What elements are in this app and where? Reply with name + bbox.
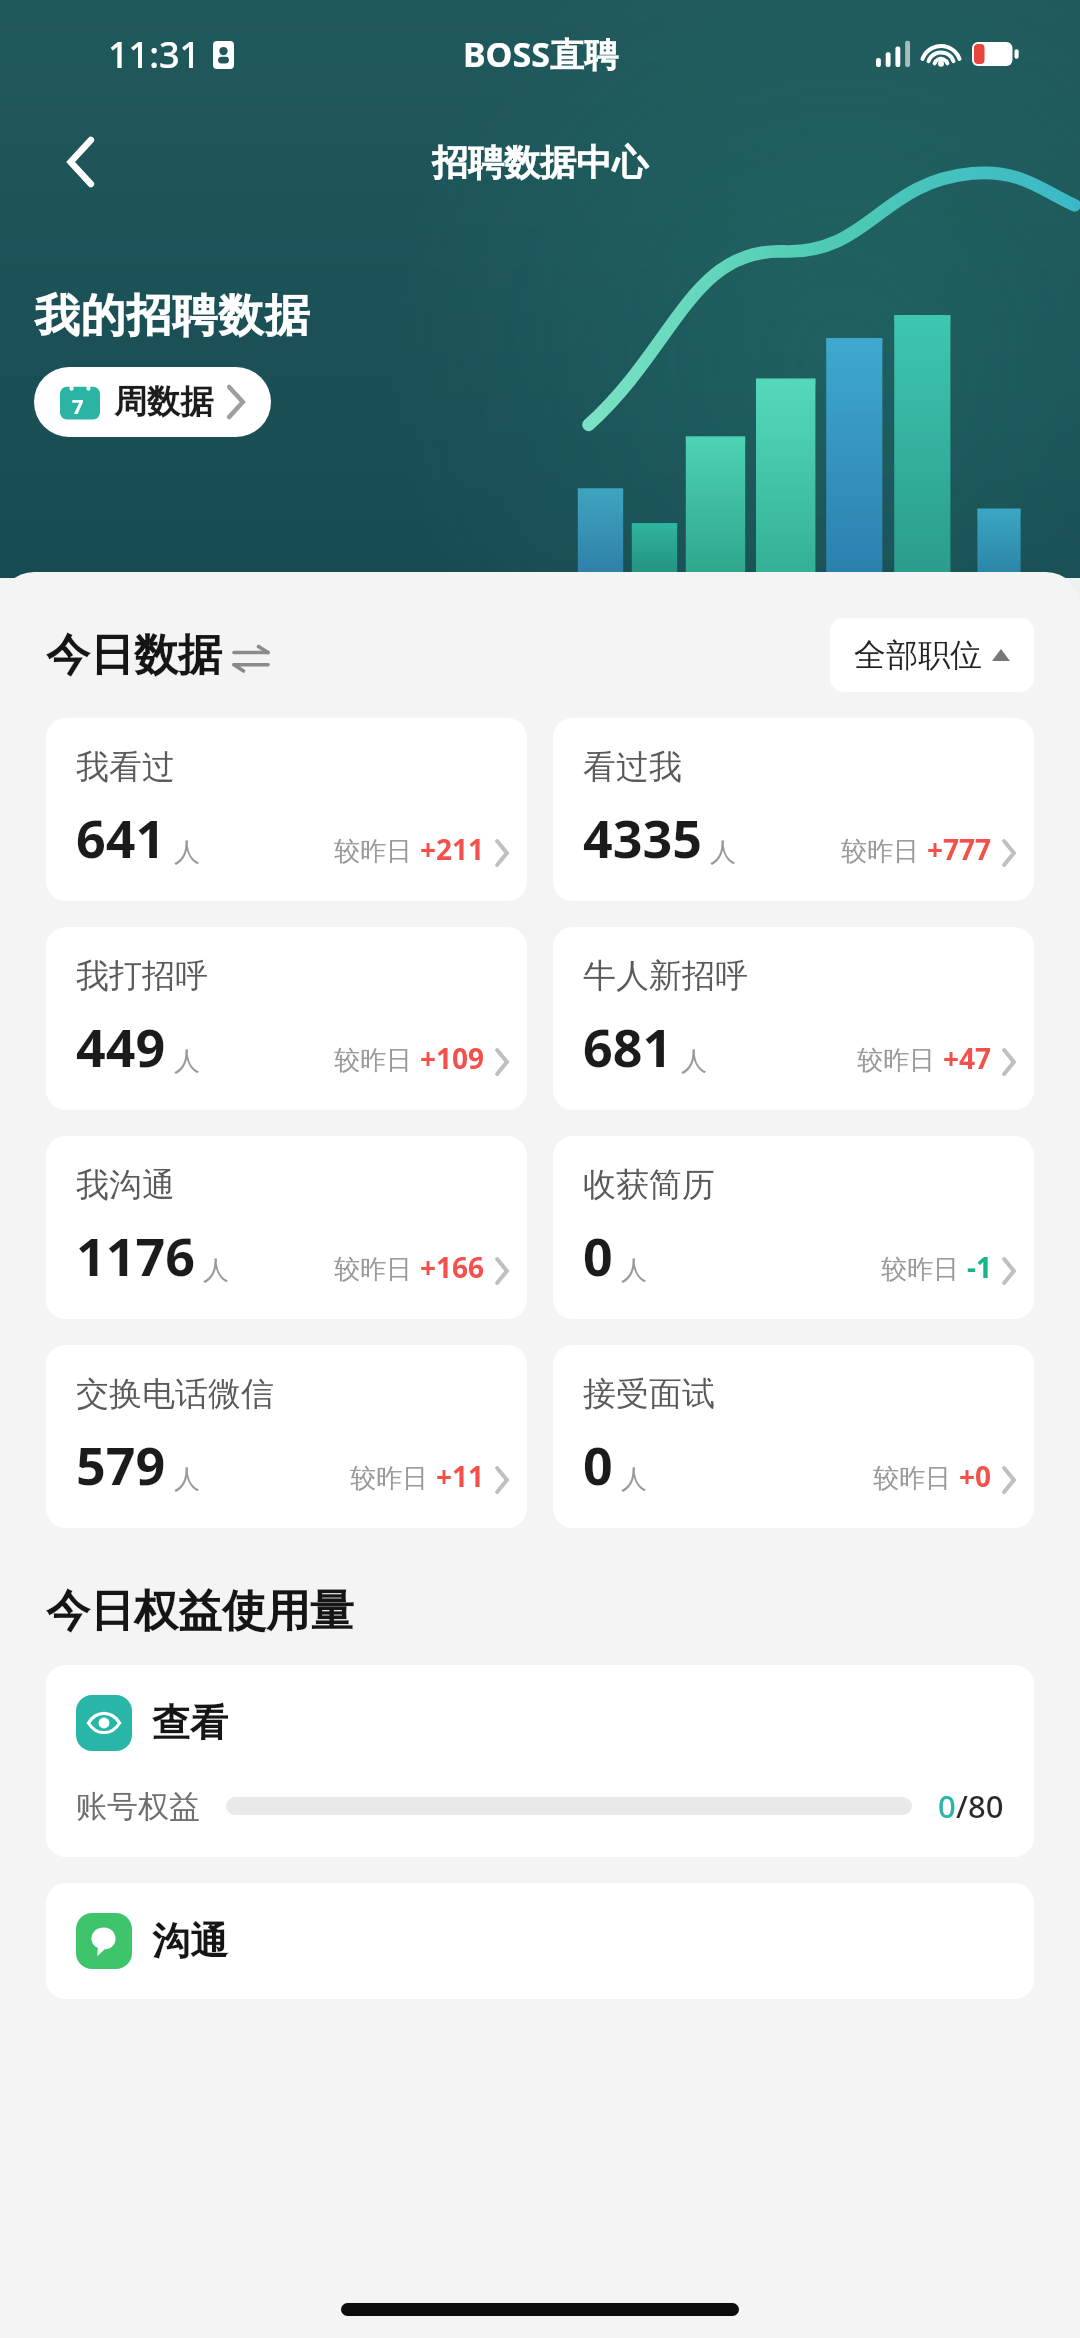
button[interactable]: 看过我 bbox=[553, 718, 1034, 901]
button[interactable]: 接受面试 bbox=[553, 1345, 1034, 1528]
staticText: +211 bbox=[420, 830, 485, 868]
staticText: 今日权益使用量 bbox=[46, 1584, 354, 1639]
staticText: 较昨日 bbox=[873, 1462, 951, 1495]
button[interactable]: 7 bbox=[34, 367, 271, 437]
staticText: 1176 bbox=[76, 1220, 195, 1291]
staticText: 人 bbox=[174, 836, 200, 869]
staticText: 0 bbox=[583, 1220, 613, 1291]
button[interactable]: 收获简历 bbox=[553, 1136, 1034, 1319]
button[interactable]: 我沟通 bbox=[46, 1136, 527, 1319]
staticText: 579 bbox=[76, 1429, 166, 1500]
button[interactable]: 交换电话微信 bbox=[46, 1345, 527, 1528]
button[interactable]: 沟通 bbox=[46, 1883, 1034, 1999]
staticText: 0 bbox=[938, 1785, 956, 1827]
staticText: 我看过 bbox=[76, 746, 175, 788]
staticText: 我沟通 bbox=[76, 1164, 175, 1206]
staticText: 较昨日 bbox=[350, 1462, 428, 1495]
staticText: 招聘数据中心 bbox=[432, 140, 648, 185]
staticText: 我打招呼 bbox=[76, 955, 208, 997]
staticText: 人 bbox=[203, 1254, 229, 1287]
button[interactable]: 牛人新招呼 bbox=[553, 927, 1034, 1110]
staticText: 接受面试 bbox=[583, 1373, 715, 1415]
staticText: +777 bbox=[927, 830, 992, 868]
staticText: 周数据 bbox=[114, 381, 213, 423]
staticText: 今日数据 bbox=[46, 628, 222, 683]
staticText: 7 bbox=[72, 393, 84, 420]
staticText: 我的招聘数据 bbox=[34, 288, 310, 345]
staticText: +47 bbox=[943, 1039, 992, 1077]
button[interactable]: 我看过 bbox=[46, 718, 527, 901]
staticText: 较昨日 bbox=[334, 835, 412, 868]
staticText: 641 bbox=[76, 802, 166, 873]
button[interactable]: 返回 bbox=[42, 123, 120, 201]
staticText: 沟通 bbox=[152, 1917, 228, 1965]
button[interactable]: 今日数据 bbox=[46, 628, 268, 683]
staticText: 人 bbox=[621, 1463, 647, 1496]
staticText: 牛人新招呼 bbox=[583, 955, 748, 997]
staticText: 11:31 bbox=[108, 30, 201, 79]
staticText: +109 bbox=[420, 1039, 485, 1077]
staticText: 较昨日 bbox=[334, 1044, 412, 1077]
staticText: 0 bbox=[583, 1429, 613, 1500]
staticText: +11 bbox=[436, 1457, 485, 1495]
staticText: -1 bbox=[967, 1248, 992, 1286]
button[interactable]: 我打招呼 bbox=[46, 927, 527, 1110]
staticText: 人 bbox=[710, 836, 736, 869]
staticText: 账号权益 bbox=[76, 1787, 200, 1826]
staticText: 较昨日 bbox=[841, 835, 919, 868]
staticText: 较昨日 bbox=[334, 1253, 412, 1286]
staticText: 人 bbox=[681, 1045, 707, 1078]
staticText: +166 bbox=[420, 1248, 485, 1286]
staticText: +0 bbox=[959, 1457, 992, 1495]
staticText: 人 bbox=[174, 1045, 200, 1078]
button[interactable]: 全部职位 bbox=[830, 618, 1034, 692]
staticText: 681 bbox=[583, 1011, 673, 1082]
staticText: 449 bbox=[76, 1011, 166, 1082]
staticText: BOSS直聘 bbox=[463, 31, 618, 77]
staticText: /80 bbox=[956, 1785, 1004, 1827]
staticText: 查看 bbox=[152, 1699, 228, 1747]
staticText: 全部职位 bbox=[854, 635, 982, 675]
staticText: 收获简历 bbox=[583, 1164, 715, 1206]
button[interactable]: 查看 bbox=[46, 1665, 1034, 1857]
staticText: 较昨日 bbox=[857, 1044, 935, 1077]
staticText: 看过我 bbox=[583, 746, 682, 788]
staticText: 人 bbox=[174, 1463, 200, 1496]
staticText: 较昨日 bbox=[881, 1253, 959, 1286]
staticText: 交换电话微信 bbox=[76, 1373, 274, 1415]
staticText: 4335 bbox=[583, 802, 702, 873]
staticText: 人 bbox=[621, 1254, 647, 1287]
